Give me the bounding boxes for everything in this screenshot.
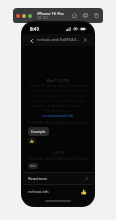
button[interactable]: Close window [16,14,20,18]
button[interactable]: More options [81,36,89,44]
staticText: nchsat.eth [28,189,49,195]
staticText: Example [31,129,46,134]
staticText: 0x4F0E4F270e70C4409746989C59C44b2200aC1f [28,157,88,161]
staticText: Mon 11:53 PM [28,78,88,82]
staticText: test [30,164,36,168]
button[interactable]: nchsat.eth [28,189,80,195]
button[interactable]: test [28,163,38,169]
staticText: Reactions [28,176,48,182]
staticText: nchsat and 0x8F04338F44379960df9... [37,37,81,43]
button[interactable]: console.example.link [42,114,74,118]
staticText: 9:41 [30,26,39,32]
button[interactable]: Home [71,12,78,19]
button[interactable]: Example [28,127,49,136]
button[interactable]: Reactions [23,173,93,184]
button[interactable]: Minimise window [22,14,26,18]
staticText: iPhone 16 Pro [37,11,64,16]
staticText: 3:38 PM [28,151,88,155]
button[interactable]: Send thumbs up [80,188,88,196]
button[interactable]: Record [93,12,100,19]
staticText: 0x4F0E4F270e70C4409746989C59C44b2200aC1f [28,121,88,125]
button[interactable]: Back [27,36,36,45]
button[interactable]: Screenshot [82,12,89,19]
staticText: iOS 18.2 [37,16,49,20]
button[interactable]: Thumbs up reaction [28,138,36,144]
staticText: The bot is now live and listening to new… [28,84,88,113]
button[interactable]: Zoom window [28,14,32,18]
